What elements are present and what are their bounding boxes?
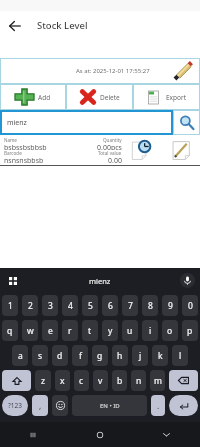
button[interactable]: a — [12, 345, 28, 366]
staticText: g — [97, 350, 103, 362]
staticText: v — [98, 375, 103, 387]
button[interactable]: q — [2, 320, 18, 341]
button[interactable]: EN • ID — [72, 395, 147, 416]
button[interactable]: n — [131, 370, 146, 391]
button[interactable]: j — [132, 345, 148, 366]
button[interactable]: mienz — [0, 110, 173, 135]
button[interactable]: 4 — [62, 295, 78, 316]
staticText: , — [39, 400, 42, 412]
button[interactable]: Edit item — [162, 135, 200, 165]
staticText: i — [149, 325, 152, 337]
button[interactable]: mienz — [26, 268, 174, 293]
staticText: y — [108, 325, 113, 337]
button[interactable]: Toolbar — [0, 268, 26, 293]
button[interactable]: History — [122, 135, 162, 165]
staticText: Barcode — [4, 150, 22, 156]
button[interactable]: Home — [66, 422, 133, 447]
staticText: 8 — [148, 300, 153, 312]
button[interactable]: Delete — [66, 84, 133, 110]
staticText: Stock Level — [37, 19, 88, 32]
button[interactable]: . — [151, 395, 165, 416]
button[interactable]: Backspace — [169, 370, 198, 391]
button[interactable]: k — [152, 345, 168, 366]
button[interactable]: Back — [0, 11, 29, 40]
button[interactable]: 5 — [82, 295, 98, 316]
staticText: EN • ID — [100, 402, 120, 410]
staticText: 3 — [48, 300, 53, 312]
staticText: j — [139, 350, 142, 362]
button[interactable]: e — [42, 320, 58, 341]
button[interactable]: d — [52, 345, 68, 366]
staticText: a — [18, 350, 23, 362]
button[interactable]: 6 — [102, 295, 118, 316]
button[interactable]: b — [112, 370, 127, 391]
staticText: 2 — [28, 300, 33, 312]
button[interactable]: ?123 — [2, 395, 28, 416]
button[interactable]: i — [142, 320, 158, 341]
button[interactable]: Emoji — [52, 395, 68, 416]
staticText: 9 — [168, 300, 173, 312]
staticText: mienz — [7, 118, 27, 128]
button[interactable]: Search — [173, 110, 200, 135]
staticText: m — [154, 375, 162, 387]
staticText: 1 — [8, 300, 13, 312]
button[interactable]: Export — [133, 84, 200, 110]
staticText: 4 — [68, 300, 73, 312]
staticText: q — [7, 325, 13, 337]
button[interactable]: c — [74, 370, 89, 391]
button[interactable]: g — [92, 345, 108, 366]
button[interactable]: Enter — [169, 395, 198, 416]
button[interactable]: t — [82, 320, 98, 341]
staticText: As at: 2025-12-01 17:55:27 — [76, 67, 150, 75]
staticText: 0 — [188, 300, 193, 312]
button[interactable]: Add — [0, 84, 66, 110]
button[interactable]: 1 — [2, 295, 18, 316]
button[interactable]: r — [62, 320, 78, 341]
button[interactable]: h — [112, 345, 128, 366]
staticText: ?123 — [8, 401, 22, 410]
button[interactable]: x — [55, 370, 70, 391]
button[interactable]: 0 — [182, 295, 198, 316]
button[interactable]: l — [172, 345, 188, 366]
button[interactable]: Shift — [2, 370, 31, 391]
staticText: x — [60, 375, 65, 387]
button[interactable]: Recent apps — [0, 422, 66, 447]
button[interactable]: Voice input — [174, 268, 200, 293]
staticText: z — [41, 375, 45, 387]
staticText: u — [127, 325, 133, 337]
button[interactable]: m — [150, 370, 165, 391]
staticText: Add — [38, 93, 51, 102]
button[interactable]: p — [182, 320, 198, 341]
button[interactable]: 3 — [42, 295, 58, 316]
button[interactable]: Back — [133, 422, 200, 447]
staticText: p — [187, 325, 193, 337]
button[interactable]: o — [162, 320, 178, 341]
button[interactable]: y — [102, 320, 118, 341]
button[interactable]: 7 — [122, 295, 138, 316]
staticText: Delete — [100, 93, 120, 102]
staticText: Total value — [98, 150, 122, 156]
staticText: w — [27, 325, 34, 337]
button[interactable]: w — [22, 320, 38, 341]
staticText: Export — [166, 93, 187, 102]
button[interactable]: f — [72, 345, 88, 366]
staticText: n — [136, 375, 142, 387]
staticText: c — [79, 375, 84, 387]
button[interactable]: 2 — [22, 295, 38, 316]
staticText: 0.00 — [108, 156, 122, 163]
staticText: bsbssbsbbsb — [4, 143, 47, 150]
staticText: 6 — [108, 300, 113, 312]
button[interactable]: 9 — [162, 295, 178, 316]
button[interactable]: Edit date — [166, 58, 200, 84]
button[interactable]: v — [93, 370, 108, 391]
staticText: r — [68, 325, 72, 337]
staticText: nsnsnsbbsb — [4, 156, 44, 163]
button[interactable]: u — [122, 320, 138, 341]
button[interactable]: s — [32, 345, 48, 366]
staticText: Quantity — [103, 137, 122, 143]
staticText: t — [88, 325, 92, 337]
button[interactable]: z — [35, 370, 51, 391]
button[interactable]: , — [32, 395, 48, 416]
staticText: 5 — [88, 300, 93, 312]
button[interactable]: 8 — [142, 295, 158, 316]
